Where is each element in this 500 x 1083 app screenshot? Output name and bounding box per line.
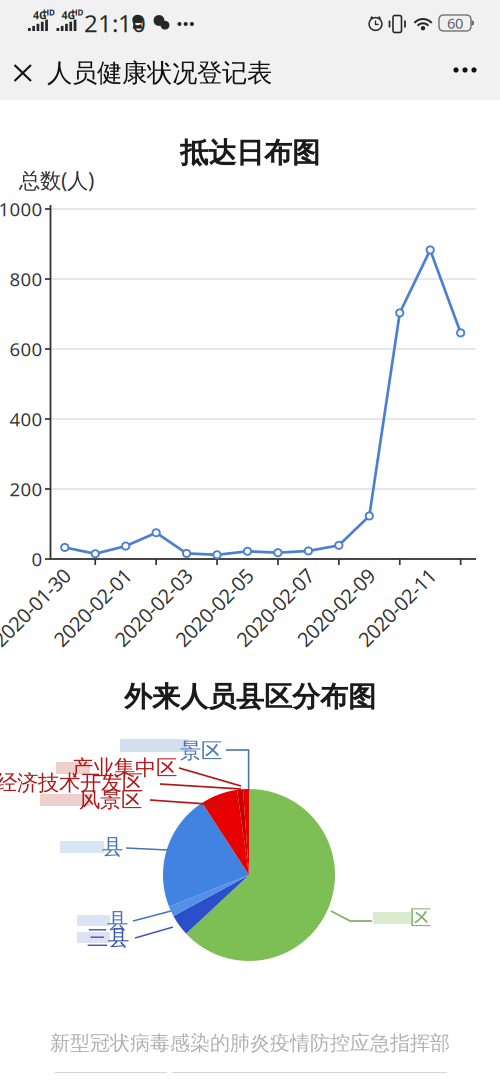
staticText: 产业集中区 <box>72 755 177 781</box>
staticText: 800 <box>9 267 42 291</box>
staticText: 三县 <box>87 925 129 951</box>
staticText: 新型冠状病毒感染的肺炎疫情防控应急指挥部 <box>50 1031 450 1055</box>
staticText: 县 <box>102 834 123 860</box>
staticText: 经济技术开发区 <box>0 770 143 796</box>
staticText: 600 <box>9 337 42 361</box>
staticText: 0 <box>31 547 42 571</box>
staticText: 4G <box>33 8 47 22</box>
staticText: 1000 <box>0 197 42 221</box>
staticText: 2020-02-09 <box>271 559 371 585</box>
staticText: 2020-02-03 <box>89 559 189 585</box>
staticText: 2020-02-01 <box>28 559 128 585</box>
staticText: 景区 <box>180 738 222 764</box>
staticText: 外来人员县区分布图 <box>124 680 376 714</box>
staticText: 2020-02-11 <box>332 559 432 585</box>
button[interactable]: 更多 <box>0 0 500 1083</box>
staticText: 400 <box>9 407 42 431</box>
staticText: 区 <box>410 905 431 931</box>
staticText: 2020-01-30 <box>0 559 67 585</box>
staticText: 抵达日布图 <box>180 136 320 170</box>
button[interactable]: 关闭 <box>0 0 500 1083</box>
staticText: 县 <box>107 908 128 934</box>
staticText: 2020-02-05 <box>149 559 249 585</box>
staticText: 人员健康状况登记表 <box>47 57 272 88</box>
staticText: 21:10 <box>84 7 146 39</box>
staticText: 60 <box>447 13 463 33</box>
staticText: HD <box>43 7 55 18</box>
staticText: 风景区 <box>79 787 142 813</box>
staticText: HD <box>71 7 83 18</box>
staticText: 2020-02-07 <box>210 559 310 585</box>
staticText: 200 <box>9 477 42 501</box>
staticText: 总数(人) <box>19 166 94 194</box>
staticText: 4G <box>61 8 75 22</box>
